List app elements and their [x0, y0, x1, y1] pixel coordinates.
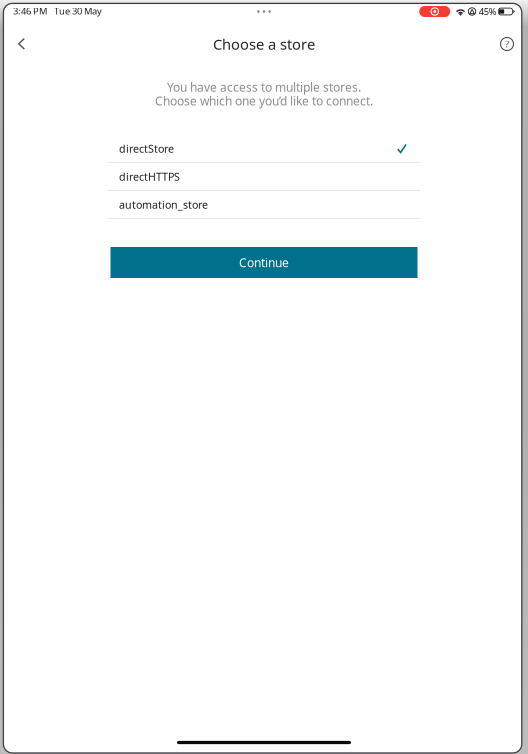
staticText: Tue 30 May	[54, 5, 102, 17]
button[interactable]: directHTTPS	[108, 163, 420, 191]
staticText: directHTTPS	[119, 169, 180, 184]
button[interactable]: Back	[4, 27, 38, 61]
staticText: automation_store	[119, 197, 208, 212]
button[interactable]: automation_store	[108, 191, 420, 219]
staticText: ?	[505, 38, 509, 50]
button[interactable]: directStore	[108, 135, 420, 163]
staticText: Continue	[239, 254, 289, 270]
staticText: Choose which one you’d like to connect.	[155, 93, 373, 109]
staticText: directStore	[119, 141, 174, 156]
staticText: 3:46 PM	[13, 5, 47, 17]
staticText: You have access to multiple stores.	[167, 79, 361, 95]
staticText: 45%	[479, 5, 497, 18]
button[interactable]: Continue	[110, 247, 417, 278]
button[interactable]: Help	[491, 28, 523, 60]
staticText: Choose a store	[213, 34, 315, 54]
